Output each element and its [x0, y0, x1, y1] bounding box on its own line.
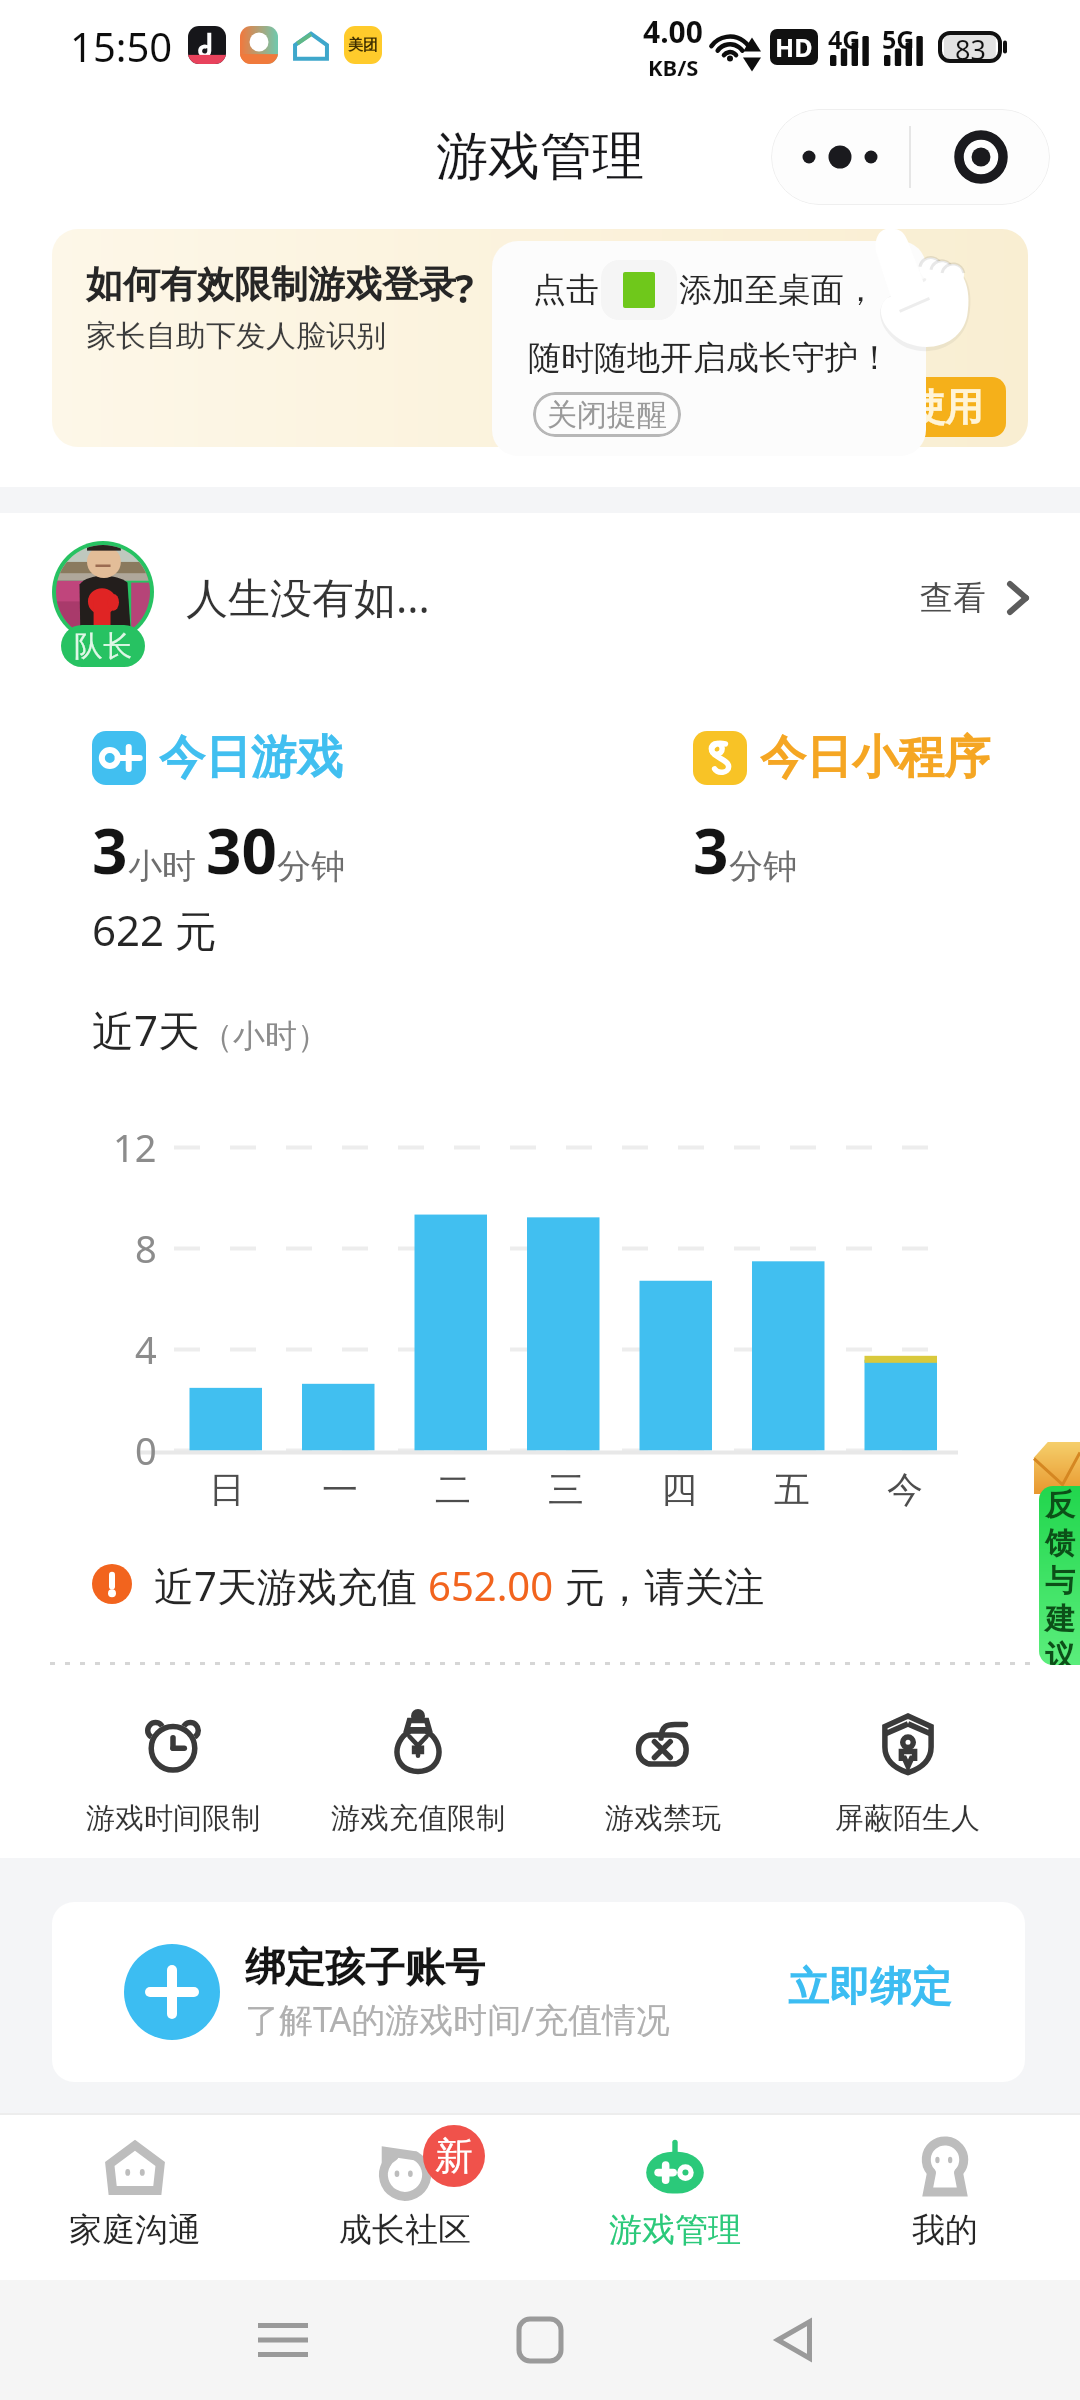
- staticText: 4: [135, 1323, 157, 1375]
- staticText: 点击: [533, 269, 599, 311]
- staticText: 分钟: [729, 845, 797, 888]
- staticText: 近7天游戏充值: [154, 1558, 428, 1610]
- staticText: 15:50: [70, 19, 173, 73]
- staticText: 游戏时间限制: [86, 1800, 260, 1837]
- staticText: 查看: [920, 577, 986, 619]
- staticText: 家庭沟通: [69, 2209, 201, 2249]
- staticText: 新: [435, 2132, 473, 2180]
- staticText: ?: [455, 261, 474, 314]
- staticText: 馈: [1045, 1524, 1075, 1562]
- button[interactable]: 我的: [810, 2113, 1080, 2268]
- staticText: 人生没有如...: [186, 568, 430, 625]
- staticText: 游戏管理: [436, 124, 644, 190]
- staticText: 3: [693, 808, 729, 892]
- staticText: 关闭提醒: [547, 396, 667, 434]
- staticText: 议: [1045, 1638, 1075, 1665]
- staticText: 如何有效限制游戏登录: [86, 261, 456, 308]
- button[interactable]: 关闭提醒: [533, 392, 681, 437]
- staticText: 今日游戏: [159, 729, 343, 787]
- staticText: 使用: [907, 383, 983, 431]
- staticText: 添加至桌面，: [679, 269, 877, 311]
- staticText: 一: [322, 1467, 358, 1511]
- staticText: 五: [774, 1467, 810, 1511]
- button[interactable]: 游戏充值限制: [295, 1710, 540, 1837]
- staticText: 30: [206, 808, 277, 892]
- staticText: 建: [1045, 1600, 1075, 1638]
- staticText: 元，请关注: [554, 1558, 765, 1610]
- staticText: 美团: [348, 36, 378, 55]
- staticText: （小时）: [201, 1016, 329, 1056]
- staticText: 游戏管理: [609, 2209, 741, 2249]
- button[interactable]: [52, 229, 1028, 447]
- staticText: 三: [548, 1467, 584, 1511]
- staticText: 今: [887, 1467, 923, 1511]
- staticText: 队长: [74, 628, 132, 665]
- staticText: 立即绑定: [788, 1962, 952, 2014]
- staticText: KB/S: [648, 52, 699, 82]
- staticText: HD: [775, 30, 813, 64]
- staticText: 屏蔽陌生人: [835, 1800, 980, 1837]
- button[interactable]: Close mini program: [911, 109, 1050, 205]
- button[interactable]: 家庭沟通: [0, 2113, 270, 2268]
- staticText: 小时: [128, 845, 196, 888]
- staticText: 反: [1045, 1486, 1075, 1524]
- button[interactable]: Feedback and suggestions: [1039, 1486, 1080, 1665]
- staticText: 622 元: [92, 901, 217, 958]
- staticText: 8: [135, 1222, 157, 1274]
- staticText: 了解TA的游戏时间/充值情况: [245, 1996, 670, 2042]
- button[interactable]: 新: [270, 2113, 540, 2268]
- button[interactable]: 屏蔽陌生人: [785, 1710, 1030, 1837]
- staticText: 3: [92, 808, 128, 892]
- staticText: 4G: [828, 22, 861, 56]
- button[interactable]: 游戏管理: [540, 2113, 810, 2268]
- staticText: 5G: [882, 22, 915, 56]
- button[interactable]: 游戏禁玩: [540, 1710, 785, 1837]
- staticText: 二: [435, 1467, 471, 1511]
- button[interactable]: Recents: [248, 2305, 318, 2375]
- staticText: 83: [955, 31, 986, 63]
- staticText: 绑定孩子账号: [245, 1942, 485, 1992]
- staticText: 12: [113, 1121, 157, 1173]
- staticText: 成长社区: [339, 2209, 471, 2249]
- staticText: 日: [209, 1467, 245, 1511]
- staticText: 0: [135, 1424, 157, 1476]
- staticText: 我的: [912, 2209, 978, 2249]
- staticText: 近7天: [92, 1001, 201, 1058]
- staticText: 游戏禁玩: [605, 1800, 721, 1837]
- button[interactable]: Home: [505, 2305, 575, 2375]
- button[interactable]: 绑定孩子账号: [52, 1902, 1025, 2082]
- button[interactable]: More options: [771, 109, 909, 205]
- button[interactable]: 使用: [884, 377, 1006, 437]
- staticText: 家长自助下发人脸识别: [86, 317, 386, 355]
- staticText: 652.00: [428, 1558, 554, 1610]
- button[interactable]: 队长: [0, 513, 1080, 683]
- button[interactable]: 游戏时间限制: [50, 1710, 295, 1837]
- staticText: 四: [661, 1467, 697, 1511]
- staticText: 与: [1045, 1562, 1075, 1600]
- staticText: 今日小程序: [760, 729, 990, 787]
- staticText: 4.00: [643, 11, 703, 52]
- staticText: 游戏充值限制: [331, 1800, 505, 1837]
- staticText: 分钟: [277, 845, 345, 888]
- staticText: 随时随地开启成长守护！: [528, 337, 891, 379]
- button[interactable]: Back: [762, 2305, 832, 2375]
